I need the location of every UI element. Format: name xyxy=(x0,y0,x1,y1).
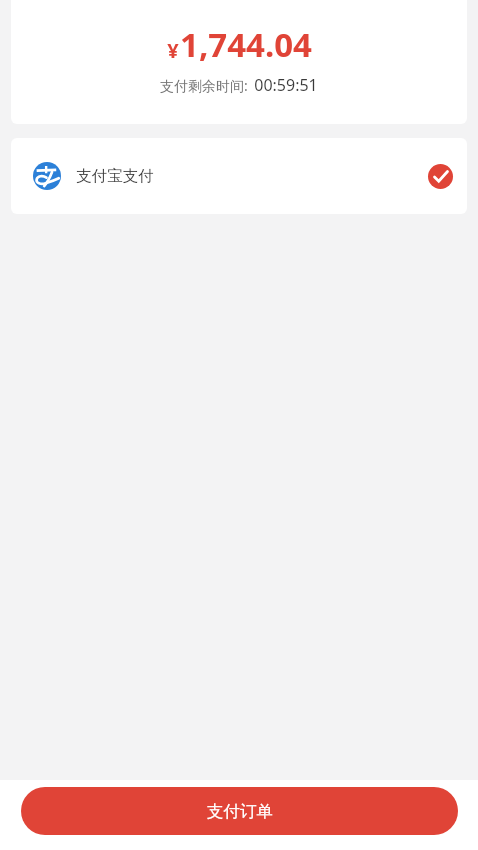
button[interactable]: Alipay xyxy=(11,138,467,214)
staticText: 1,744.04 xyxy=(180,22,312,67)
staticText: 支付订单 xyxy=(207,801,273,822)
other: Alipay xyxy=(33,162,61,190)
button[interactable]: 支付订单 xyxy=(21,787,458,835)
staticText: ¥ xyxy=(167,37,179,64)
staticText: 支付剩余时间: xyxy=(160,76,248,95)
staticText: 支付宝支付 xyxy=(76,166,154,186)
other: Selected xyxy=(428,164,453,189)
staticText: 00:59:51 xyxy=(254,74,318,96)
